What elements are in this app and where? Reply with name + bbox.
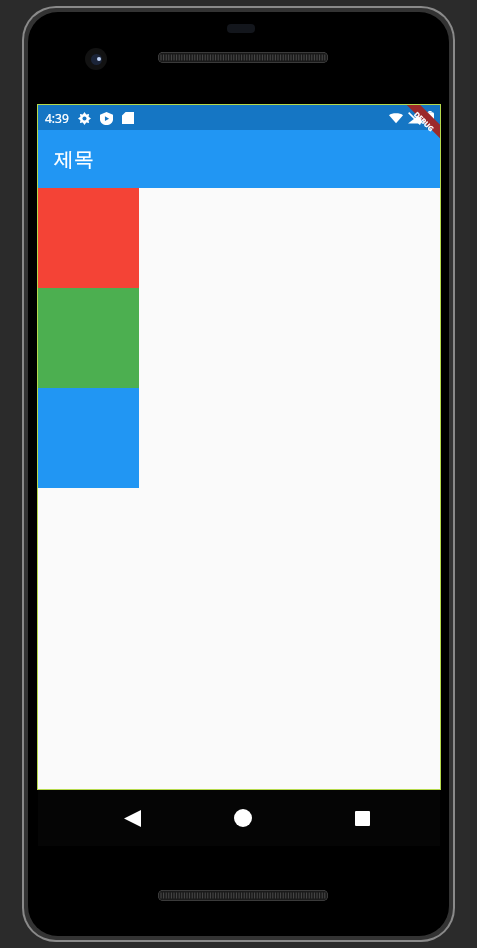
staticText: 제목	[54, 147, 94, 172]
button[interactable]: Home	[216, 790, 270, 846]
button[interactable]: Back	[105, 790, 159, 846]
staticText: 4:39	[45, 110, 69, 126]
button[interactable]: Recent apps	[335, 790, 389, 846]
staticText: DEBUG	[411, 110, 436, 134]
